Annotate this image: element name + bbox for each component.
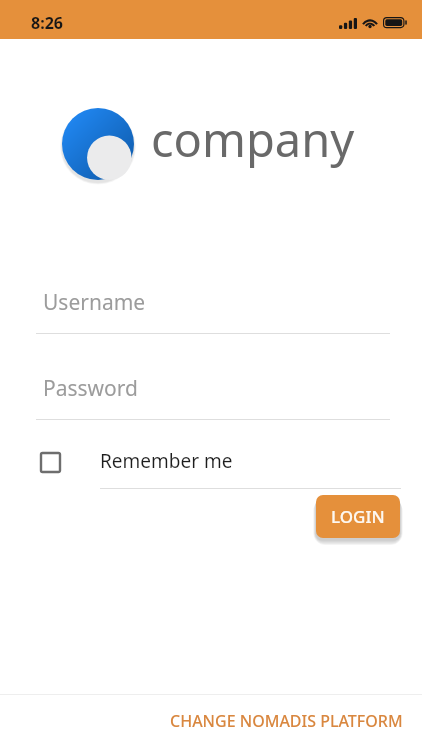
button[interactable]: Username xyxy=(36,283,390,334)
staticText: LOGIN xyxy=(331,505,385,528)
staticText: Remember me xyxy=(100,448,233,474)
staticText: company xyxy=(151,107,355,171)
button[interactable]: Remember me checkbox xyxy=(34,446,66,478)
button[interactable]: Password xyxy=(36,369,390,420)
button[interactable]: CHANGE NOMADIS PLATFORM xyxy=(160,700,412,742)
staticText: Username xyxy=(43,288,146,317)
button[interactable]: Remember me xyxy=(100,443,401,489)
staticText: Password xyxy=(43,374,138,403)
staticText: 8:26 xyxy=(31,12,63,34)
button[interactable]: LOGIN xyxy=(316,495,400,538)
staticText: CHANGE NOMADIS PLATFORM xyxy=(170,710,403,732)
